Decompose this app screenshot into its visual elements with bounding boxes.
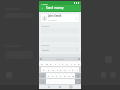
- staticText: n: [68, 74, 70, 77]
- staticText: c: [56, 74, 58, 77]
- button[interactable]: ,: [46, 79, 50, 84]
- staticText: s: [48, 68, 50, 71]
- staticText: .: [73, 80, 74, 83]
- button[interactable]: n: [67, 73, 71, 78]
- button[interactable]: Backspace: [75, 73, 81, 78]
- button[interactable]: k: [71, 67, 75, 72]
- button[interactable]: e: [49, 61, 53, 66]
- button[interactable]: Numbers: [39, 79, 46, 84]
- button[interactable]: c: [55, 73, 59, 78]
- staticText: x: [52, 74, 54, 77]
- button[interactable]: Back: [41, 7, 44, 10]
- staticText: a: [43, 68, 45, 71]
- button[interactable]: d: [51, 67, 55, 72]
- button[interactable]: m: [71, 73, 75, 78]
- button[interactable]: Change recipient: [75, 17, 78, 20]
- staticText: z: [48, 74, 50, 77]
- button[interactable]: Shift: [39, 73, 46, 78]
- button[interactable]: h: [63, 67, 67, 72]
- staticText: i: [71, 62, 72, 65]
- staticText: John Smith: [48, 14, 62, 18]
- staticText: Purpose: [41, 44, 50, 47]
- staticText: d: [52, 68, 54, 71]
- button[interactable]: l: [75, 67, 79, 72]
- button[interactable]: o: [73, 61, 77, 66]
- button[interactable]: Back: [48, 86, 50, 88]
- staticText: r: [55, 62, 56, 65]
- button[interactable]: g: [59, 67, 63, 72]
- staticText: u: [66, 62, 68, 65]
- button[interactable]: y: [61, 61, 65, 66]
- staticText: Select: [42, 48, 49, 51]
- staticText: g: [60, 68, 62, 71]
- button[interactable]: i: [69, 61, 73, 66]
- staticText: p: [78, 62, 80, 65]
- staticText: j: [69, 68, 70, 71]
- button[interactable]: z: [46, 73, 51, 78]
- button[interactable]: f: [55, 67, 59, 72]
- staticText: Purpose: [5, 43, 21, 48]
- staticText: Send money: [46, 6, 64, 10]
- staticText: 12:06: [41, 2, 48, 5]
- staticText: y: [62, 62, 64, 65]
- button[interactable]: a: [41, 67, 46, 72]
- staticText: Amount: [41, 25, 50, 28]
- button[interactable]: r: [53, 61, 57, 66]
- staticText: m: [72, 74, 75, 77]
- staticText: f: [57, 68, 58, 71]
- button[interactable]: w: [44, 61, 49, 66]
- button[interactable]: x: [51, 73, 55, 78]
- staticText: w: [46, 62, 48, 65]
- button[interactable]: p: [77, 61, 81, 66]
- staticText: o: [74, 62, 76, 65]
- button[interactable]: q: [39, 61, 44, 66]
- staticText: t: [59, 62, 60, 65]
- button[interactable]: j: [67, 67, 71, 72]
- staticText: l: [77, 68, 78, 71]
- button[interactable]: v: [59, 73, 63, 78]
- button[interactable]: u: [65, 61, 69, 66]
- button[interactable]: t: [57, 61, 61, 66]
- button[interactable]: Select: [41, 47, 79, 52]
- staticText: v: [60, 74, 62, 77]
- staticText: e: [50, 62, 52, 65]
- staticText: •••• 4821: [48, 19, 57, 22]
- staticText: Amount: [5, 6, 21, 11]
- button[interactable]: b: [63, 73, 67, 78]
- staticText: q: [41, 62, 43, 65]
- button[interactable]: Back: [39, 5, 81, 11]
- button[interactable]: s: [46, 67, 51, 72]
- staticText: k: [72, 68, 74, 71]
- button[interactable]: John Smith: [41, 14, 79, 22]
- staticText: h: [64, 68, 66, 71]
- button[interactable]: Enter: [75, 79, 81, 84]
- staticText: b: [64, 74, 66, 77]
